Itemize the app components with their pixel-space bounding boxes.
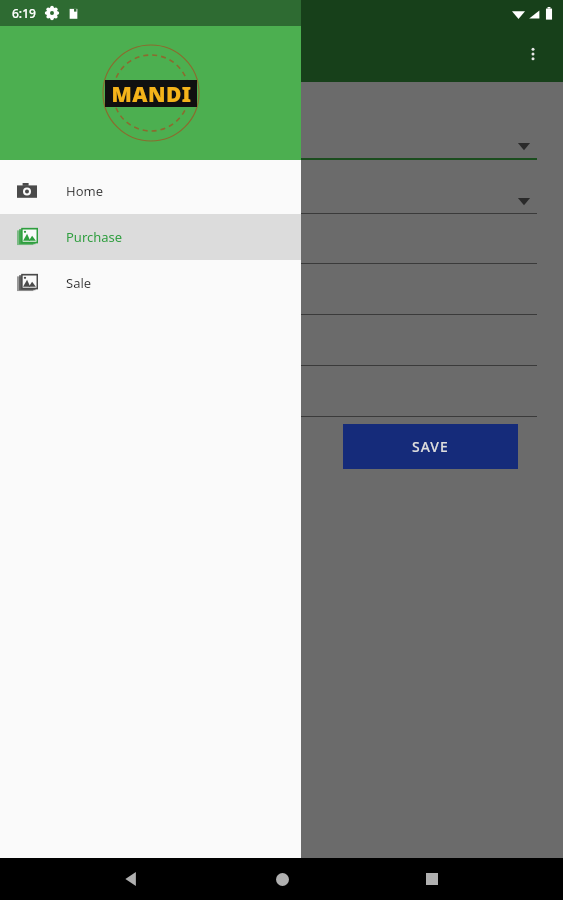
staticText: Purchase (66, 228, 123, 246)
button[interactable]: Recent apps (412, 859, 452, 899)
staticText: MANDI (111, 80, 192, 107)
button[interactable]: Home (0, 168, 301, 214)
button[interactable]: Open dropdown (516, 195, 532, 207)
staticText: Home (66, 182, 103, 200)
staticText: SAVE (412, 437, 449, 456)
button[interactable]: Purchase (0, 214, 301, 260)
button[interactable]: Back (111, 859, 151, 899)
staticText: Sale (66, 274, 92, 292)
button[interactable]: More options (513, 34, 553, 74)
staticText: 6:19 (12, 5, 36, 21)
button[interactable]: Home (262, 859, 302, 899)
button[interactable]: SAVE (343, 424, 518, 469)
button[interactable]: Sale (0, 260, 301, 306)
button[interactable]: Open dropdown (516, 140, 532, 152)
